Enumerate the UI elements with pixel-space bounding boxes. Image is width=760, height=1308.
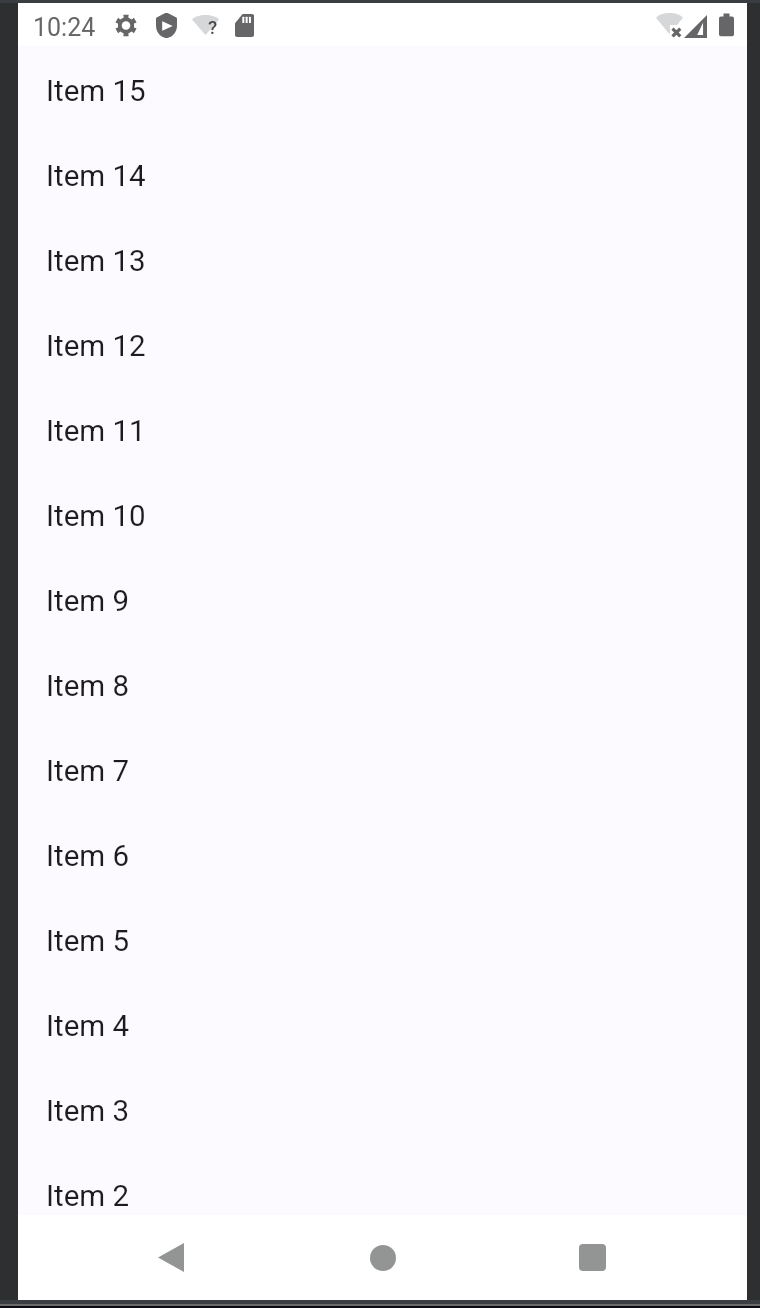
- button[interactable]: Item 7: [18, 726, 747, 811]
- button[interactable]: Item 13: [18, 216, 747, 301]
- button[interactable]: Item 10: [18, 471, 747, 556]
- button[interactable]: Item 12: [18, 301, 747, 386]
- button[interactable]: Recent apps: [540, 1215, 645, 1300]
- staticText: ?: [208, 16, 218, 38]
- button[interactable]: Item 2: [18, 1151, 747, 1215]
- staticText: Item 6: [46, 839, 130, 874]
- button[interactable]: Item 4: [18, 981, 747, 1066]
- button[interactable]: Item 6: [18, 811, 747, 896]
- button[interactable]: Item 11: [18, 386, 747, 471]
- button[interactable]: Item 5: [18, 896, 747, 981]
- staticText: Item 8: [46, 669, 130, 704]
- button[interactable]: Item 14: [18, 131, 747, 216]
- staticText: Item 12: [46, 329, 146, 364]
- staticText: Item 15: [46, 74, 146, 109]
- staticText: Item 13: [46, 244, 146, 279]
- staticText: Item 2: [46, 1179, 130, 1214]
- staticText: Item 14: [46, 159, 146, 194]
- staticText: 10:24: [33, 13, 96, 42]
- button[interactable]: Item 9: [18, 556, 747, 641]
- staticText: Item 10: [46, 499, 146, 534]
- staticText: Item 7: [46, 754, 130, 789]
- staticText: Item 9: [46, 584, 130, 619]
- staticText: Item 4: [46, 1009, 130, 1044]
- button[interactable]: Item 15: [18, 46, 747, 131]
- button[interactable]: Back: [118, 1215, 223, 1300]
- staticText: Item 5: [46, 924, 130, 959]
- button[interactable]: Home: [330, 1215, 435, 1300]
- staticText: Item 11: [46, 414, 146, 449]
- button[interactable]: Item 8: [18, 641, 747, 726]
- button[interactable]: Item 3: [18, 1066, 747, 1151]
- staticText: Item 3: [46, 1094, 130, 1129]
